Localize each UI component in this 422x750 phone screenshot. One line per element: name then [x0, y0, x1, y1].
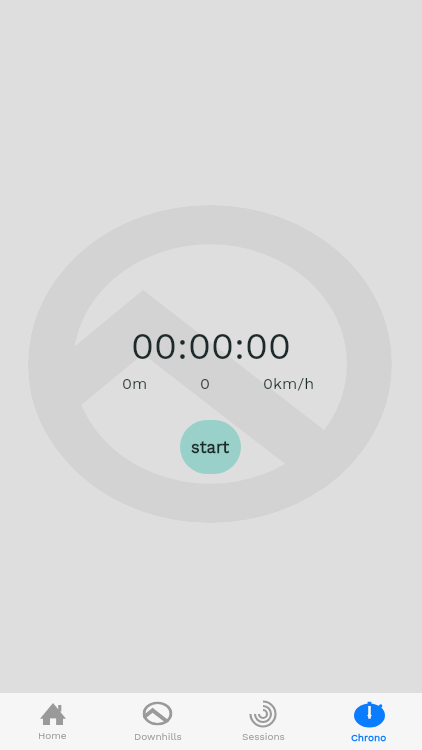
button[interactable]: start [180, 420, 241, 474]
button[interactable]: Sessions [210, 693, 316, 750]
staticText: 00:00:00 [131, 325, 291, 368]
staticText: 0km/h [263, 374, 315, 393]
staticText: Chrono [351, 732, 387, 744]
staticText: 0 [200, 374, 210, 393]
staticText: Home [38, 730, 67, 742]
button[interactable]: Chrono [316, 693, 422, 750]
staticText: Downhills [134, 731, 182, 743]
button[interactable]: Downhills [105, 693, 210, 750]
staticText: 0m [122, 374, 148, 393]
staticText: Sessions [242, 731, 285, 743]
staticText: start [191, 438, 230, 457]
button[interactable]: Home [0, 693, 105, 750]
